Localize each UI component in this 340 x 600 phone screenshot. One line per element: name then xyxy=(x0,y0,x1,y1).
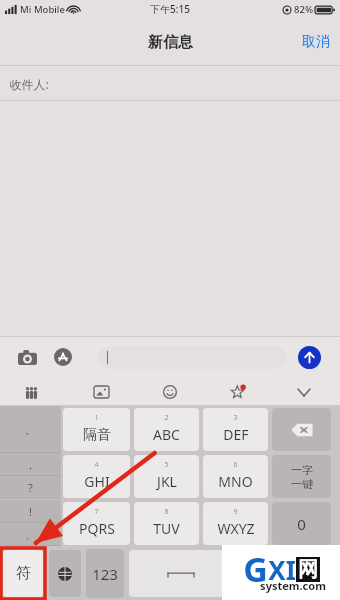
staticText: 123 xyxy=(92,564,118,584)
staticText: 。 xyxy=(25,423,36,437)
button[interactable]: 9 xyxy=(203,502,268,545)
staticText: MNO xyxy=(218,472,253,491)
button[interactable]: Camera xyxy=(13,343,41,371)
staticText: XI xyxy=(268,552,296,587)
button[interactable]: 4 xyxy=(63,455,130,498)
staticText: WXYZ xyxy=(217,519,255,538)
button[interactable]: 2 xyxy=(134,408,199,451)
button[interactable]: ， xyxy=(0,453,61,476)
button[interactable]: Favorites xyxy=(226,380,250,404)
staticText: 2 xyxy=(164,413,169,423)
staticText: G xyxy=(243,546,268,592)
staticText: JKL xyxy=(157,472,177,491)
staticText: 6 xyxy=(233,460,238,470)
staticText: ABC xyxy=(153,425,180,444)
staticText: 4 xyxy=(94,460,99,470)
staticText: GHI xyxy=(84,472,110,491)
staticText: 3 xyxy=(233,413,238,423)
button[interactable]: Space xyxy=(129,550,233,597)
staticText: ， xyxy=(25,458,36,472)
staticText: DEF xyxy=(223,425,249,444)
staticText: 新信息 xyxy=(148,33,193,52)
staticText: 1 xyxy=(94,413,99,423)
button[interactable]: 0 xyxy=(272,502,331,545)
staticText: 一键 xyxy=(291,477,313,491)
staticText: 9 xyxy=(233,507,238,517)
staticText: 7 xyxy=(94,507,99,517)
button[interactable]: 6 xyxy=(203,455,268,498)
staticText: 、 xyxy=(25,528,36,542)
button[interactable]: Memoji xyxy=(19,380,43,404)
staticText: 隔音 xyxy=(83,426,111,444)
staticText: 8 xyxy=(164,507,169,517)
button[interactable] xyxy=(98,346,286,369)
staticText: 收件人: xyxy=(9,76,49,92)
button[interactable]: Backspace xyxy=(272,408,331,451)
button[interactable]: 取消 xyxy=(292,27,340,57)
button[interactable]: Emoji xyxy=(158,380,182,404)
button[interactable]: 7 xyxy=(63,502,130,545)
button[interactable]: 8 xyxy=(134,502,199,545)
button[interactable]: 、 xyxy=(0,523,61,546)
staticText: TUV xyxy=(153,519,180,538)
button[interactable]: 5 xyxy=(134,455,199,498)
button[interactable]: Switch language xyxy=(49,550,81,597)
button[interactable]: ! xyxy=(0,500,61,523)
staticText: 网 xyxy=(298,557,318,582)
button[interactable]: 1 xyxy=(63,408,130,451)
staticText: 下午5:15 xyxy=(150,2,190,16)
staticText: 符 xyxy=(16,564,31,583)
staticText: 0 xyxy=(297,514,306,534)
staticText: 一字 xyxy=(291,463,313,477)
button[interactable]: 符 xyxy=(3,550,43,597)
button[interactable]: 收件人: xyxy=(0,66,340,101)
staticText: 82% xyxy=(294,3,313,16)
staticText: 取消 xyxy=(302,33,330,51)
staticText: system.com xyxy=(260,578,326,593)
button[interactable]: Collapse xyxy=(292,380,316,404)
button[interactable]: ? xyxy=(0,476,61,499)
staticText: ! xyxy=(29,504,32,519)
button[interactable]: 123 xyxy=(86,549,124,598)
staticText: PQRS xyxy=(79,519,115,538)
staticText: ? xyxy=(28,480,33,495)
staticText: 5 xyxy=(164,460,169,470)
button[interactable]: 一字 xyxy=(272,455,331,498)
button[interactable]: Photos xyxy=(89,380,113,404)
staticText: Mi Mobile xyxy=(20,3,65,16)
button[interactable]: 新信息 xyxy=(144,29,197,56)
button[interactable]: 3 xyxy=(203,408,268,451)
button[interactable]: Send xyxy=(298,346,321,369)
button[interactable]: App Store xyxy=(49,343,77,371)
